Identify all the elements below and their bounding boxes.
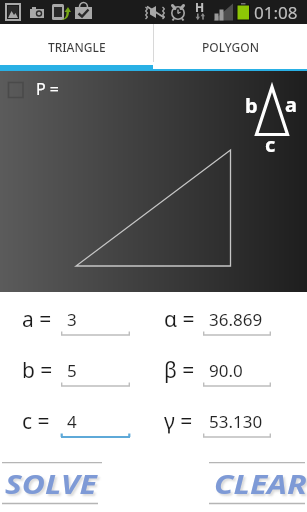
staticText: 90.0	[209, 359, 243, 382]
staticText: POLYGON	[202, 39, 259, 55]
staticText: CLEAR	[214, 466, 307, 501]
staticText: 5	[67, 359, 77, 382]
staticText: 36.869	[209, 308, 263, 331]
staticText: 01:08	[254, 1, 298, 24]
staticText: α =	[164, 305, 195, 334]
button[interactable]: 90.0	[203, 355, 271, 389]
staticText: 4	[67, 410, 77, 433]
staticText: H	[195, 0, 205, 15]
staticText: c =	[22, 407, 50, 436]
staticText: a	[285, 91, 297, 118]
staticText: P =	[36, 78, 59, 100]
staticText: 3	[67, 308, 77, 331]
button[interactable]: TRIANGLE	[0, 24, 153, 65]
button[interactable]: 36.869	[203, 304, 271, 338]
button[interactable]: CLEAR	[209, 463, 305, 504]
staticText: TRIANGLE	[48, 39, 106, 55]
staticText: a =	[22, 305, 52, 334]
staticText: SOLVE	[5, 466, 98, 501]
button[interactable]: 53.130	[203, 406, 271, 440]
staticText: b	[245, 92, 258, 119]
button[interactable]: 4	[61, 406, 130, 440]
staticText: b =	[22, 356, 53, 385]
button[interactable]: POLYGON	[154, 24, 307, 65]
button[interactable]: 5	[61, 355, 130, 389]
button[interactable]: 3	[61, 304, 130, 338]
staticText: β =	[164, 356, 195, 385]
staticText: γ =	[164, 407, 193, 436]
button[interactable]: SOLVE	[2, 463, 102, 504]
staticText: c	[265, 131, 276, 158]
staticText: 53.130	[209, 410, 263, 433]
